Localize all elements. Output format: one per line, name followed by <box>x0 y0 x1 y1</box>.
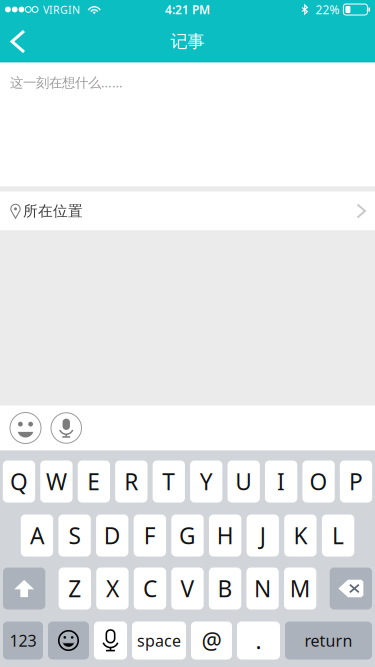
staticText: D <box>104 520 121 550</box>
staticText: T <box>162 466 175 496</box>
button[interactable]: Dictation <box>94 621 127 659</box>
button[interactable]: 123 <box>3 621 43 659</box>
staticText: A <box>30 520 44 550</box>
button[interactable]: C <box>134 567 166 609</box>
button[interactable]: F <box>134 514 166 556</box>
button[interactable]: return <box>285 621 372 659</box>
button[interactable]: H <box>209 514 241 556</box>
button[interactable]: Y <box>190 460 222 502</box>
button[interactable]: X <box>96 567 128 609</box>
staticText: B <box>217 573 232 603</box>
button[interactable]: U <box>227 460 260 502</box>
staticText: Q <box>10 466 28 496</box>
button[interactable]: Voice <box>51 413 81 443</box>
staticText: L <box>332 520 344 550</box>
staticText: S <box>69 520 81 550</box>
button[interactable]: Delete <box>330 567 372 609</box>
button[interactable]: M <box>284 567 316 609</box>
staticText: 记事 <box>170 31 204 52</box>
button[interactable]: Z <box>59 567 91 609</box>
staticText: J <box>260 520 266 550</box>
staticText: 123 <box>9 630 36 651</box>
staticText: 22% <box>315 1 339 17</box>
button[interactable]: B <box>209 567 241 609</box>
staticText: space <box>137 630 181 651</box>
button[interactable]: I <box>265 460 297 502</box>
staticText: F <box>144 520 156 550</box>
button[interactable]: K <box>284 514 317 556</box>
button[interactable]: O <box>302 460 335 502</box>
button[interactable]: J <box>247 514 279 556</box>
staticText: 所在位置 <box>23 202 83 220</box>
button[interactable]: N <box>246 567 279 609</box>
button[interactable]: 所在位置 <box>0 191 375 230</box>
staticText: Y <box>200 466 213 496</box>
button[interactable]: Q <box>3 460 35 502</box>
button[interactable]: A <box>21 514 53 556</box>
staticText: K <box>293 520 307 550</box>
button[interactable]: @ <box>191 621 232 659</box>
button[interactable]: L <box>322 514 354 556</box>
button[interactable]: E <box>78 460 110 502</box>
button[interactable]: Shift <box>3 567 45 609</box>
button[interactable]: Emoji <box>10 412 41 443</box>
staticText: @ <box>201 625 221 655</box>
staticText: N <box>254 573 271 603</box>
staticText: M <box>290 573 311 603</box>
button[interactable]: D <box>96 514 128 556</box>
staticText: 这一刻在想什么…… <box>10 73 123 91</box>
staticText: U <box>235 466 252 496</box>
button[interactable]: Back <box>0 20 42 63</box>
staticText: return <box>304 630 352 651</box>
staticText: VIRGIN <box>43 2 80 17</box>
staticText: G <box>179 520 196 550</box>
staticText: P <box>349 466 363 496</box>
staticText: V <box>180 573 194 603</box>
staticText: R <box>124 466 138 496</box>
button[interactable]: W <box>40 460 73 502</box>
button[interactable]: S <box>58 514 91 556</box>
button[interactable]: G <box>171 514 204 556</box>
staticText: H <box>217 520 234 550</box>
staticText: O <box>310 466 328 496</box>
staticText: I <box>277 466 285 496</box>
button[interactable]: Emoji <box>48 621 89 659</box>
staticText: C <box>143 573 157 603</box>
button[interactable]: P <box>340 460 372 502</box>
button[interactable]: R <box>115 460 147 502</box>
staticText: W <box>46 466 67 496</box>
button[interactable]: T <box>153 460 185 502</box>
button[interactable]: V <box>171 567 204 609</box>
staticText: . <box>255 625 261 655</box>
button[interactable]: . <box>237 621 280 659</box>
staticText: E <box>87 466 100 496</box>
staticText: Z <box>68 573 81 603</box>
staticText: 4:21 PM <box>165 1 210 17</box>
button[interactable]: space <box>132 621 186 659</box>
staticText: X <box>106 573 119 603</box>
